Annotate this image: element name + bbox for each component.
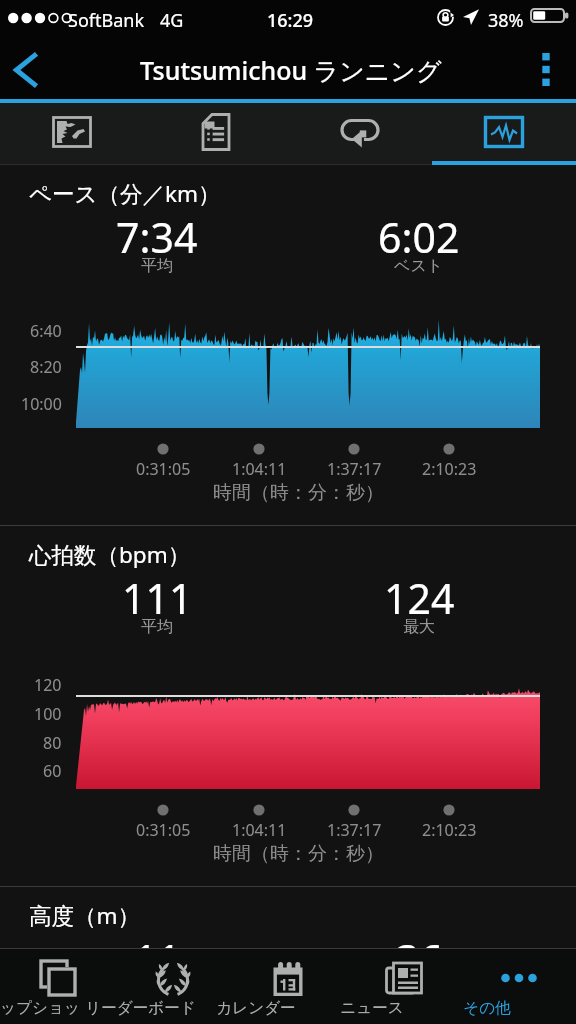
- button[interactable]: カレンダー: [230, 948, 345, 1024]
- staticText: SoftBank: [68, 8, 144, 33]
- button[interactable]: ニュース: [346, 948, 461, 1024]
- staticText: Tsutsumichou ランニング: [140, 53, 442, 87]
- staticText: 111: [122, 570, 193, 626]
- staticText: 36: [396, 931, 443, 948]
- staticText: 高度（m）: [29, 900, 141, 931]
- button[interactable]: Charts: [432, 103, 576, 165]
- staticText: 心拍数（bpm）: [29, 539, 191, 570]
- staticText: ニュース: [340, 998, 404, 1018]
- staticText: 7:34: [116, 209, 198, 265]
- button[interactable]: Laps: [288, 103, 432, 165]
- staticText: 10:00: [21, 393, 62, 415]
- staticText: 最大: [403, 617, 435, 637]
- button[interactable]: More options: [516, 40, 576, 99]
- staticText: 11: [134, 931, 181, 948]
- staticText: 0:31:05: [136, 458, 191, 480]
- staticText: 1:37:17: [327, 819, 382, 841]
- staticText: 100: [34, 703, 62, 725]
- button[interactable]: Map: [0, 103, 144, 165]
- button[interactable]: Back: [0, 40, 50, 99]
- staticText: 1:04:11: [232, 819, 287, 841]
- staticText: 時間（時：分：秒）: [213, 481, 384, 505]
- staticText: 80: [43, 732, 62, 754]
- staticText: 6:02: [378, 209, 460, 265]
- staticText: 124: [384, 570, 455, 626]
- staticText: リーダーボード: [85, 998, 196, 1018]
- staticText: 38%: [488, 8, 524, 33]
- staticText: 120: [34, 674, 62, 696]
- button[interactable]: その他: [461, 948, 576, 1024]
- staticText: その他: [463, 998, 511, 1018]
- staticText: 8:20: [30, 356, 62, 378]
- staticText: 16:29: [267, 8, 314, 33]
- staticText: 60: [43, 760, 62, 782]
- button[interactable]: スナップショット: [0, 948, 115, 1024]
- staticText: 時間（時：分：秒）: [213, 842, 384, 866]
- staticText: 1:04:11: [232, 458, 287, 480]
- staticText: 2:10:23: [422, 819, 477, 841]
- staticText: 1:37:17: [327, 458, 382, 480]
- staticText: 0:31:05: [136, 819, 191, 841]
- staticText: 6:40: [30, 320, 62, 342]
- staticText: ベスト: [394, 256, 444, 276]
- staticText: 4G: [160, 8, 184, 33]
- staticText: 2:10:23: [422, 458, 477, 480]
- staticText: 平均: [141, 256, 173, 276]
- staticText: スナップショット: [0, 998, 83, 1018]
- button[interactable]: リーダーボード: [115, 948, 230, 1024]
- staticText: カレンダー: [216, 998, 296, 1018]
- staticText: ペース（分／km）: [29, 178, 221, 209]
- staticText: 平均: [141, 617, 173, 637]
- button[interactable]: Details: [144, 103, 288, 165]
